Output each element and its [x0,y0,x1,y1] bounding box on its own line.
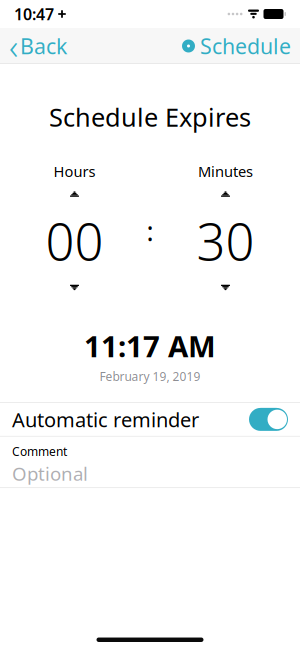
button[interactable]: Decrease Hours [52,274,96,300]
staticText: February 19, 2019 [99,368,200,384]
staticText: ‹ [9,23,18,69]
button[interactable]: Schedule [182,26,300,66]
staticText: 30 [196,207,254,274]
staticText: 00 [45,207,103,274]
staticText: Schedule Expires [49,100,251,134]
staticText: Optional [12,461,88,486]
staticText: Automatic reminder [12,406,199,433]
button[interactable]: Increase Minutes [203,181,247,207]
staticText: 10:47 [14,3,54,25]
button[interactable]: Optional [12,459,288,487]
button[interactable]: ‹ [0,17,67,75]
staticText: Schedule [200,32,291,60]
staticText: Minutes [198,162,253,181]
button[interactable]: Increase Hours [52,181,96,207]
staticText: Hours [53,162,95,181]
button[interactable]: Automatic reminder [0,403,300,436]
button[interactable]: Decrease Minutes [203,274,247,300]
staticText: Comment [12,443,67,459]
staticText: 11:17 AM [84,326,216,365]
staticText: Back [20,32,67,60]
staticText: : [146,213,153,249]
